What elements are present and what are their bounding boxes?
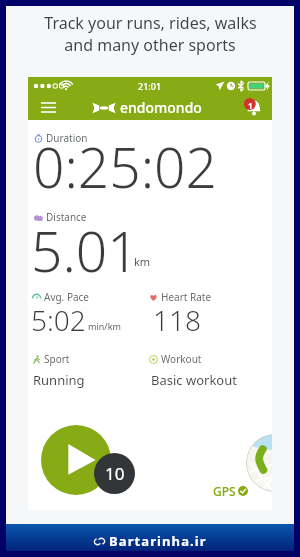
staticText: min/km bbox=[88, 320, 121, 332]
staticText: GPS bbox=[213, 483, 236, 499]
staticText: km bbox=[134, 254, 151, 269]
staticText: 21:01 bbox=[138, 80, 162, 92]
staticText: Duration bbox=[46, 131, 88, 145]
button[interactable]: GPS bbox=[213, 483, 248, 499]
staticText: Bartarinha.ir bbox=[109, 532, 207, 550]
staticText: Avg. Pace bbox=[44, 290, 89, 304]
staticText: 0:25:02 bbox=[33, 129, 217, 204]
button[interactable]: Map bbox=[246, 434, 272, 492]
button[interactable]: Menu bbox=[34, 95, 272, 120]
button[interactable]: 10 bbox=[94, 453, 135, 494]
staticText: 10 bbox=[105, 462, 125, 485]
staticText: Sport bbox=[44, 352, 70, 366]
staticText: 118 bbox=[153, 301, 201, 339]
staticText: 5.01 bbox=[31, 213, 139, 288]
button[interactable]: Notifications bbox=[244, 98, 264, 118]
staticText: endomondo bbox=[120, 98, 202, 117]
staticText: and many other sports bbox=[64, 34, 236, 56]
button[interactable]: Start workout bbox=[41, 425, 111, 495]
button[interactable]: Bartarinha.ir bbox=[0, 524, 300, 557]
staticText: Heart Rate bbox=[161, 290, 212, 304]
staticText: Track your runs, rides, walks bbox=[44, 12, 257, 34]
staticText: Distance bbox=[46, 210, 87, 224]
staticText: Workout bbox=[161, 352, 202, 366]
staticText: Running bbox=[33, 371, 85, 389]
staticText: 5:02 bbox=[31, 301, 86, 339]
staticText: 1 bbox=[248, 100, 253, 111]
staticText: Basic workout bbox=[151, 371, 237, 389]
